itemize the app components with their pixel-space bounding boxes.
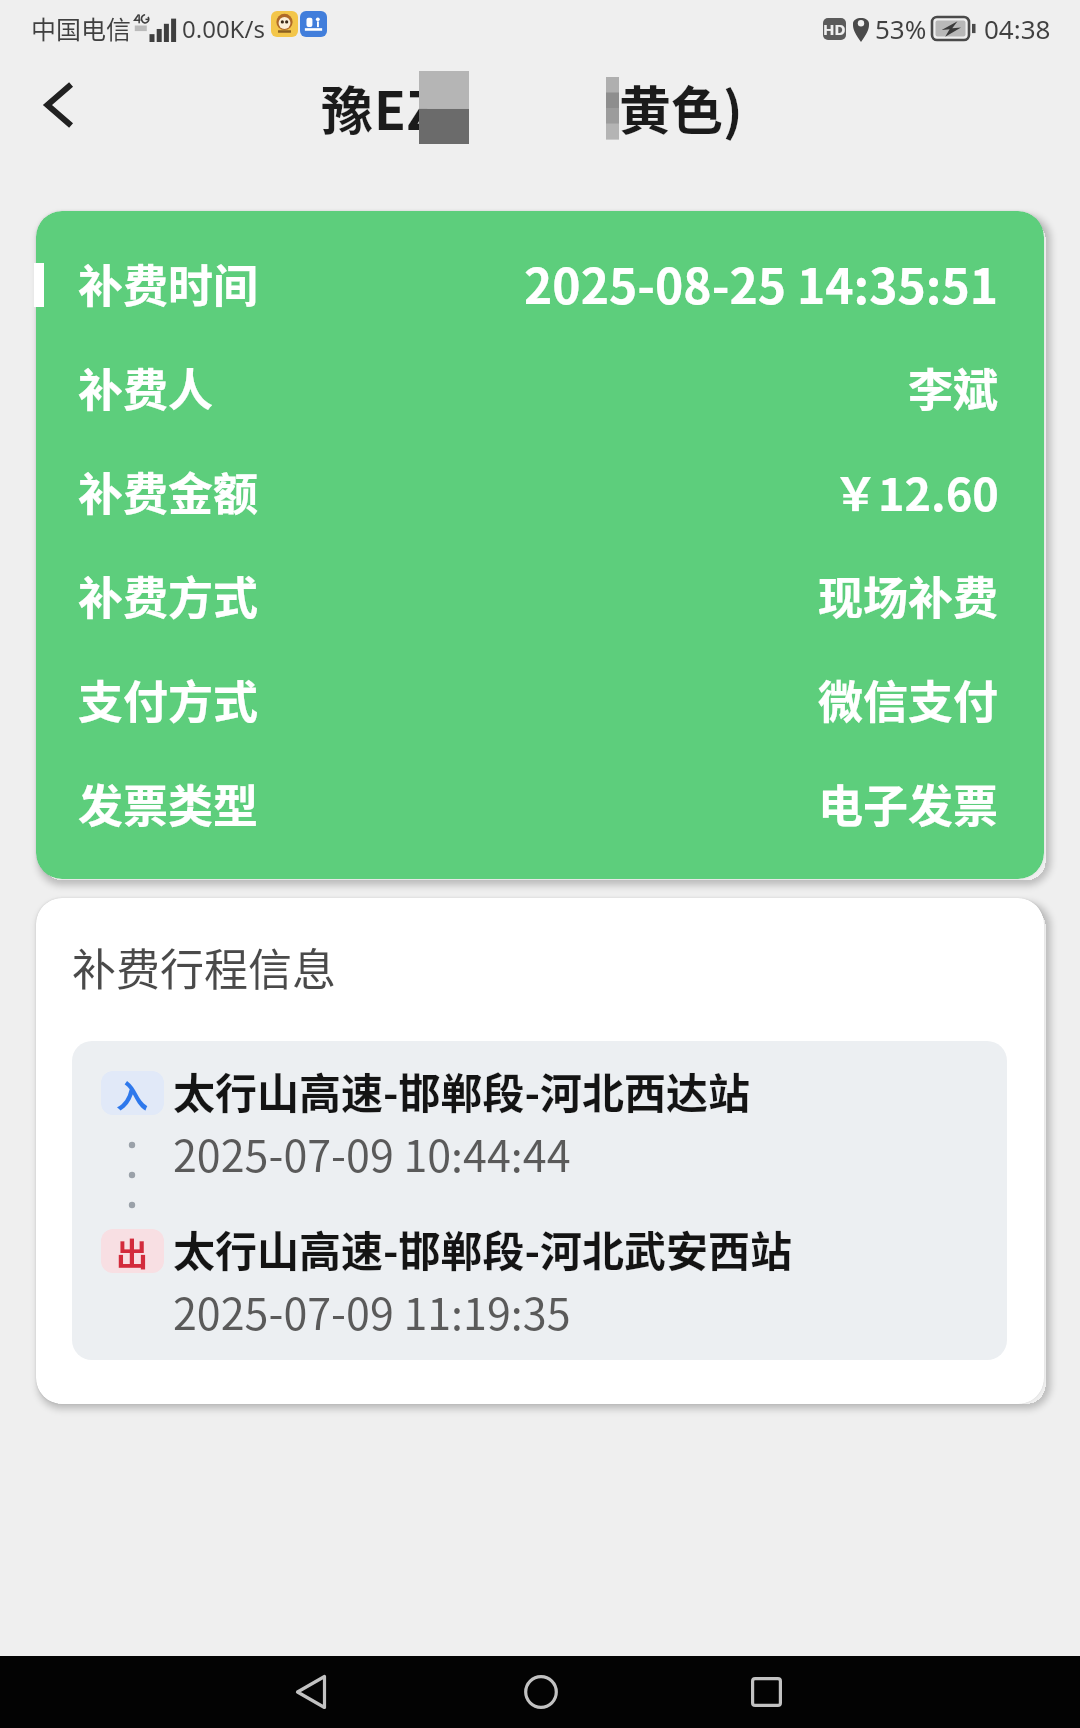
staticText: 53%: [875, 11, 927, 46]
staticText: HD: [823, 19, 846, 39]
staticText: 0.00K/s: [182, 12, 265, 45]
button[interactable]: 入: [101, 1060, 985, 1184]
staticText: 黄色): [619, 70, 743, 145]
button[interactable]: 出: [101, 1218, 985, 1342]
staticText: 补费行程信息: [72, 935, 336, 999]
staticText: 补费时间: [78, 251, 259, 316]
button[interactable]: Back: [18, 65, 98, 145]
staticText: 微信支付: [818, 667, 999, 732]
staticText: 2025-07-09 11:19:35: [173, 1280, 571, 1342]
button[interactable]: Home: [464, 1656, 617, 1728]
staticText: 电子发票: [818, 771, 999, 836]
staticText: 李斌: [908, 355, 999, 420]
staticText: 补费人: [78, 355, 214, 420]
staticText: 支付方式: [78, 667, 259, 732]
staticText: 2025-07-09 10:44:44: [173, 1122, 571, 1184]
button[interactable]: Recent apps: [690, 1656, 843, 1728]
staticText: ￥12.60: [833, 459, 999, 524]
staticText: 太行山高速-邯郸段-河北西达站: [173, 1060, 751, 1121]
staticText: 出: [116, 1229, 149, 1273]
staticText: 补费方式: [78, 563, 259, 628]
staticText: 补费金额: [78, 459, 259, 524]
staticText: 2025-08-25 14:35:51: [524, 248, 999, 318]
staticText: 入: [116, 1071, 149, 1115]
staticText: 太行山高速-邯郸段-河北武安西站: [173, 1218, 793, 1279]
staticText: EZ: [374, 70, 438, 145]
staticText: 中国电信: [31, 10, 132, 46]
button[interactable]: Back: [234, 1656, 387, 1728]
staticText: 豫: [321, 70, 374, 145]
staticText: 现场补费: [818, 563, 999, 628]
staticText: 04:38: [984, 11, 1051, 46]
staticText: 发票类型: [78, 771, 259, 836]
